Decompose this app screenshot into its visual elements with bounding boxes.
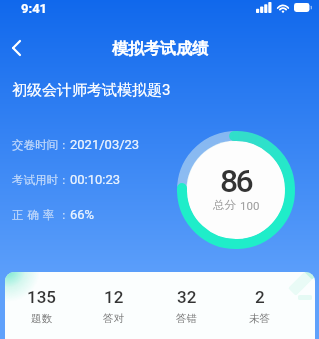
staticText: 模拟考试成绩	[112, 39, 208, 59]
staticText: 考试用时：	[12, 173, 70, 187]
staticText: 答错	[176, 312, 197, 325]
button[interactable]: 12	[77, 272, 150, 339]
staticText: 12	[104, 287, 124, 307]
staticText: 9:41	[21, 1, 48, 16]
staticText: 2	[255, 287, 265, 307]
staticText: 未答	[249, 312, 270, 325]
staticText: 交卷时间：	[12, 138, 70, 152]
staticText: 100	[240, 199, 260, 212]
staticText: 初级会计师考试模拟题3	[12, 81, 171, 100]
staticText: 总分	[213, 198, 236, 212]
staticText: 答对	[103, 312, 124, 325]
button[interactable]: 135	[5, 272, 77, 339]
staticText: 135	[27, 287, 56, 307]
button[interactable]: 2	[223, 272, 296, 339]
button[interactable]: 32	[150, 272, 223, 339]
staticText: 正 确 率 ：	[12, 208, 71, 222]
staticText: 66%	[70, 207, 95, 222]
staticText: 题数	[31, 312, 52, 325]
staticText: 32	[177, 287, 197, 307]
staticText: 2021/03/23	[70, 137, 140, 152]
staticText: 86	[220, 162, 251, 200]
button[interactable]: Back	[0, 32, 40, 66]
staticText: 00:10:23	[70, 172, 121, 187]
